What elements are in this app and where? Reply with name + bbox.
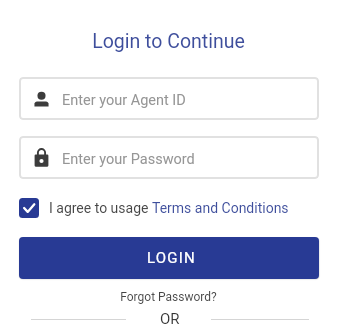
staticText: I agree to usage <box>49 200 152 216</box>
button[interactable]: Forgot Password? <box>0 290 337 304</box>
button[interactable]: Terms and Conditions <box>152 200 289 216</box>
button[interactable]: LOGIN <box>19 237 319 279</box>
staticText: Enter your Agent ID <box>62 92 186 109</box>
staticText: OR <box>160 310 180 328</box>
button[interactable]: Enter your Agent ID <box>19 77 319 120</box>
staticText: Login to Continue <box>0 30 337 53</box>
staticText: Enter your Password <box>62 151 195 168</box>
button[interactable]: I agree to usage, checked <box>19 198 39 218</box>
staticText: LOGIN <box>147 249 196 267</box>
button[interactable]: Enter your Password <box>19 136 319 179</box>
